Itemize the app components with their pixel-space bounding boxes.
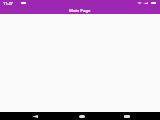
staticText: 11:47 <box>3 1 13 6</box>
button[interactable]: Back <box>22 112 47 120</box>
button[interactable]: Home <box>69 112 94 120</box>
button[interactable]: Recent apps <box>114 112 139 120</box>
staticText: Main Page <box>69 7 91 13</box>
